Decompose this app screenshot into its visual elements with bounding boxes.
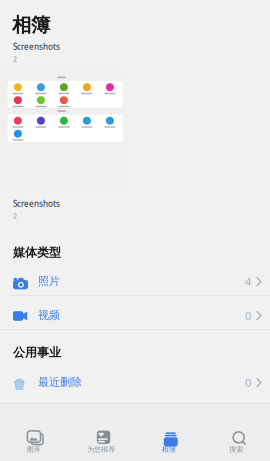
button[interactable]: 搜索 <box>202 404 270 461</box>
button[interactable]: 照片 <box>0 266 270 296</box>
staticText: 图库 <box>27 445 41 454</box>
button[interactable]: 最近删除 <box>0 367 270 397</box>
button[interactable]: Screenshots <box>0 0 270 228</box>
button[interactable]: Screenshots <box>0 0 270 193</box>
staticText: 为您推荐 <box>87 445 115 454</box>
button[interactable]: 相簿 <box>135 404 202 461</box>
staticText: 0 <box>245 375 251 390</box>
staticText: 公用事业 <box>13 345 61 360</box>
staticText: Screenshots <box>13 41 60 52</box>
button[interactable]: 为您推荐 <box>67 404 135 461</box>
button[interactable]: 图库 <box>0 404 67 461</box>
staticText: 相簿 <box>162 445 176 454</box>
staticText: 相簿 <box>12 13 50 37</box>
staticText: 2 <box>13 211 17 220</box>
staticText: 4 <box>245 274 251 289</box>
staticText: 视频 <box>38 308 60 322</box>
button[interactable]: 视频 <box>0 300 270 330</box>
staticText: Screenshots <box>13 198 60 209</box>
staticText: 最近删除 <box>38 375 82 389</box>
staticText: 搜索 <box>229 445 243 454</box>
staticText: 0 <box>245 308 251 323</box>
staticText: 照片 <box>38 274 60 288</box>
staticText: 2 <box>13 54 17 63</box>
staticText: 媒体类型 <box>13 245 61 260</box>
